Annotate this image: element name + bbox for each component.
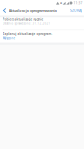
staticText: ● <box>60 2 62 4</box>
button[interactable]: Back <box>0 6 9 15</box>
staticText: Zaplanuj aktualizacje oprogram. <box>2 32 52 36</box>
staticText: Ostatnio sprawdzono: 31.12.2021 <box>2 22 50 25</box>
button[interactable]: Pobierz aktualizacje ręcznie <box>0 17 84 30</box>
button[interactable]: Zaplanuj aktualizacje oprogram. <box>0 30 84 42</box>
staticText: Pobierz aktualizacje ręcznie <box>2 17 43 21</box>
button[interactable]: SZUKAJ <box>68 6 84 15</box>
staticText: 11:37 <box>73 1 82 5</box>
staticText: Aktualizacja oprogramowania <box>9 8 57 13</box>
staticText: SZUKAJ <box>70 8 82 13</box>
staticText: Wyłączone <box>2 36 15 40</box>
